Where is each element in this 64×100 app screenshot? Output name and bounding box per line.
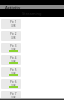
staticText: 3/8 (11, 60, 16, 64)
staticText: 3/8 (11, 72, 16, 76)
staticText: Pic 6 (10, 80, 17, 84)
staticText: Pic 2 (10, 32, 17, 36)
button[interactable]: Pic 2 (1, 31, 21, 41)
button[interactable]: Pic 5 (1, 67, 21, 77)
staticText: 3/8 (11, 24, 16, 28)
staticText: Streaming (22, 11, 42, 16)
staticText: Pic 3 (10, 44, 17, 48)
staticText: Pic 4 (10, 56, 17, 60)
button[interactable]: Pic 1 (1, 19, 21, 29)
staticText: 3/8 (11, 36, 16, 40)
button[interactable]: Pic 4 (1, 55, 21, 65)
staticText: Pic 1 (10, 20, 17, 24)
staticText: Pic 5 (10, 68, 17, 72)
staticText: Pic 7 (10, 92, 17, 96)
button[interactable]: Pic 3 (1, 43, 21, 53)
button[interactable]: Pic 6 (1, 79, 21, 89)
staticText: 3/8 (11, 84, 16, 88)
staticText: Activity (5, 5, 21, 9)
staticText: 3/8 (11, 48, 16, 52)
button[interactable]: Pic 7 (1, 91, 21, 100)
staticText: 3/8 (11, 96, 16, 100)
